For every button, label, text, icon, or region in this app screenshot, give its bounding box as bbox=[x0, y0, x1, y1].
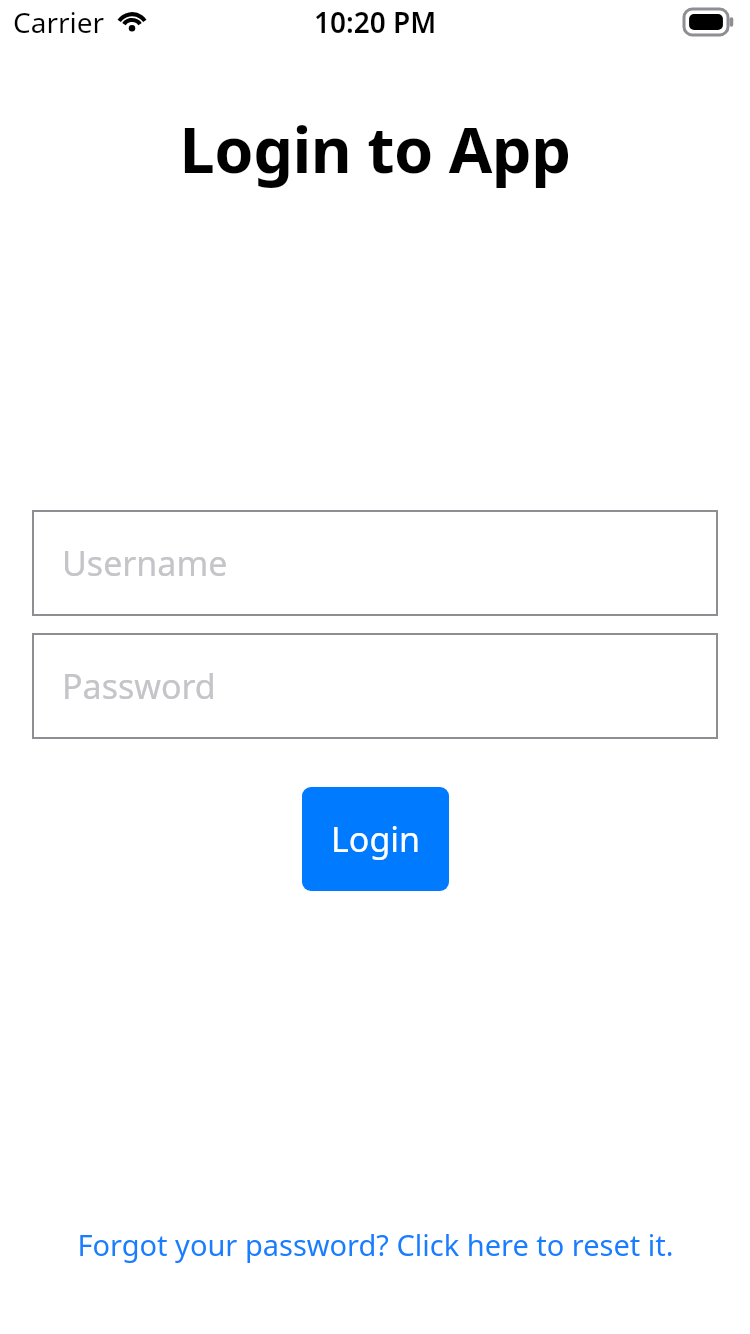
other: Wi-Fi signal bbox=[115, 9, 149, 35]
other: Battery full bbox=[684, 9, 734, 35]
staticText: Carrier bbox=[13, 3, 105, 41]
button[interactable]: Password bbox=[32, 633, 718, 739]
staticText: Login to App bbox=[0, 106, 750, 192]
button[interactable]: Username bbox=[32, 510, 718, 616]
staticText: Login bbox=[331, 816, 421, 862]
button[interactable]: Login bbox=[302, 787, 449, 891]
staticText: Username bbox=[62, 540, 228, 586]
staticText: 10:20 PM bbox=[314, 3, 437, 41]
button[interactable]: Forgot your password? Click here to rese… bbox=[0, 1217, 750, 1272]
staticText: Forgot your password? Click here to rese… bbox=[77, 1225, 674, 1264]
staticText: Password bbox=[62, 663, 216, 709]
